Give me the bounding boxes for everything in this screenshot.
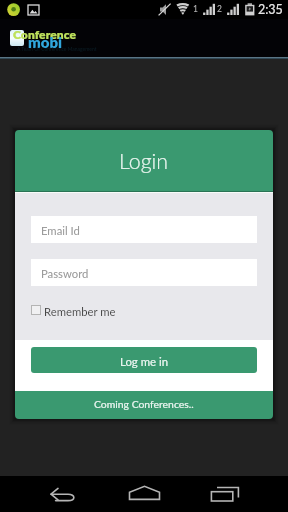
- staticText: Password: [41, 267, 89, 281]
- button[interactable]: Recent apps: [200, 476, 250, 512]
- button[interactable]: Back: [38, 476, 88, 512]
- button[interactable]: Coming Conferences..: [15, 391, 273, 419]
- staticText: 2: [217, 4, 222, 14]
- staticText: 1: [193, 4, 198, 14]
- staticText: mobi: [28, 33, 63, 51]
- staticText: Email Id: [41, 224, 80, 238]
- staticText: A Team Of Conference Management: [17, 46, 97, 52]
- staticText: Login: [119, 148, 169, 174]
- staticText: Remember me: [44, 305, 116, 319]
- button[interactable]: Password: [31, 259, 257, 286]
- button[interactable]: Log me in: [31, 347, 257, 373]
- button[interactable]: Home: [119, 476, 169, 512]
- staticText: Log me in: [120, 355, 169, 369]
- staticText: 2:35: [258, 2, 283, 17]
- staticText: Coming Conferences..: [94, 398, 194, 410]
- button[interactable]: Remember me: [31, 305, 116, 319]
- staticText: Conference: [13, 27, 77, 41]
- button[interactable]: Email Id: [31, 216, 257, 243]
